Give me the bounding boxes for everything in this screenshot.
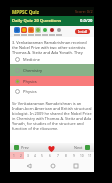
button[interactable]: Medicine <box>10 55 94 64</box>
staticText: 2 <box>20 154 22 158</box>
button[interactable]: 7 <box>54 152 62 159</box>
staticText: 10 <box>80 154 84 158</box>
staticText: Sir Venkataraman Ramakrishnan is an Indi… <box>12 101 92 131</box>
staticText: 7 <box>57 154 59 158</box>
staticText: 3 <box>27 154 29 158</box>
button[interactable]: 6 <box>46 152 54 159</box>
staticText: 8 <box>65 154 67 158</box>
staticText: 1 <box>13 154 15 158</box>
button[interactable]: Home <box>48 161 57 170</box>
staticText: Physics <box>23 89 37 94</box>
staticText: Next <box>74 145 83 150</box>
staticText: 6 <box>49 154 51 158</box>
button[interactable]: 2 <box>17 152 24 159</box>
staticText: 5 <box>41 154 43 158</box>
staticText: Daily Quiz 20 Questions <box>12 18 62 24</box>
button[interactable]: Chemistry <box>10 64 94 76</box>
button[interactable]: Favorite <box>47 144 55 152</box>
button[interactable]: 10 <box>78 152 86 159</box>
button[interactable]: 4 <box>31 152 38 159</box>
staticText: Prev <box>21 145 29 150</box>
button[interactable]: 9 <box>70 152 78 159</box>
button[interactable]: Prev <box>10 143 31 152</box>
button[interactable]: 8 <box>62 152 70 159</box>
button[interactable]: 11 <box>86 152 94 159</box>
staticText: Physics <box>23 79 37 84</box>
staticText: MPPSC Quiz <box>12 9 39 15</box>
staticText: 11 <box>88 154 92 158</box>
staticText: Chemistry <box>23 68 43 73</box>
button[interactable]: Recent apps <box>71 161 80 170</box>
button[interactable]: Install <box>75 29 90 34</box>
button[interactable]: Back <box>24 161 33 170</box>
staticText: 3. Venkataraman Ramakrishnan received th… <box>12 40 92 55</box>
button[interactable]: 1 <box>10 152 17 159</box>
staticText: Install <box>78 30 88 34</box>
button[interactable]: Physics <box>10 76 94 86</box>
button[interactable]: 3 <box>24 152 31 159</box>
button[interactable]: Install <box>10 26 94 37</box>
button[interactable]: Next <box>72 143 94 152</box>
button[interactable]: 5 <box>38 152 46 159</box>
staticText: Medicine <box>23 57 41 62</box>
staticText: Score: 0/2 <box>75 9 93 14</box>
staticText: 0.0/20 <box>80 18 93 24</box>
staticText: 9 <box>73 154 75 158</box>
button[interactable]: Physics <box>10 86 94 96</box>
staticText: 4 <box>34 154 36 158</box>
